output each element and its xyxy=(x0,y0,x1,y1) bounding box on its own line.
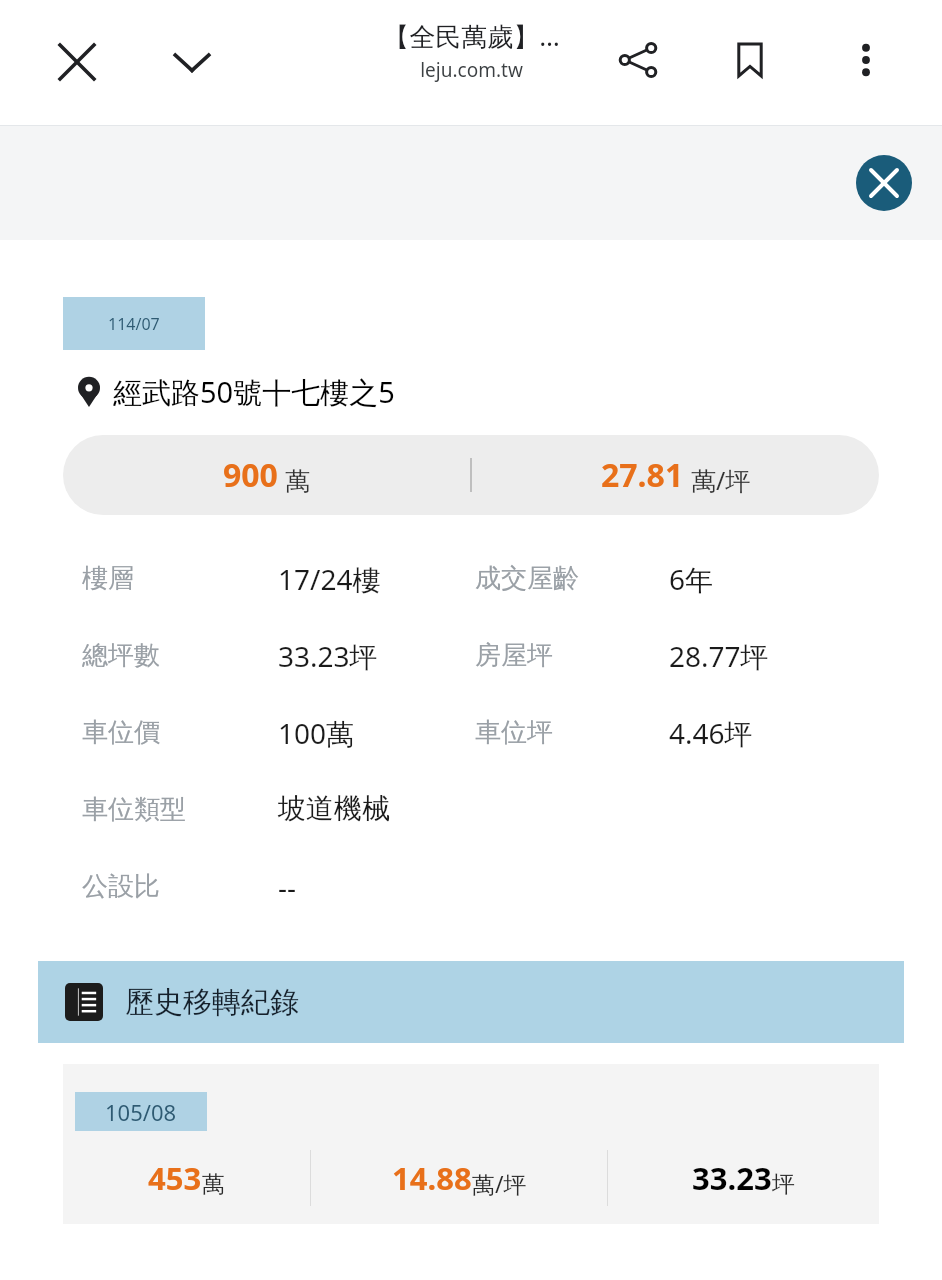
button[interactable]: Close ad xyxy=(856,155,912,211)
staticText: 歷史移轉紀錄 xyxy=(125,984,299,1021)
staticText: 28.77坪 xyxy=(669,637,769,675)
staticText: 車位類型 xyxy=(82,793,186,826)
button[interactable]: More options xyxy=(828,22,904,98)
button[interactable]: Share xyxy=(600,22,676,98)
staticText: 114/07 xyxy=(108,313,160,335)
staticText: 成交屋齡 xyxy=(475,562,579,595)
staticText: 萬 xyxy=(285,466,310,497)
staticText: 萬/坪 xyxy=(472,1168,527,1199)
staticText: 453 xyxy=(148,1157,202,1199)
staticText: 萬/坪 xyxy=(691,463,751,497)
staticText: 100萬 xyxy=(278,714,355,752)
staticText: 車位坪 xyxy=(475,716,553,749)
staticText: 14.88 xyxy=(392,1157,472,1199)
button[interactable]: Close xyxy=(40,25,114,99)
staticText: 車位價 xyxy=(82,716,160,749)
staticText: 27.81 xyxy=(601,453,684,497)
staticText: 33.23 xyxy=(692,1157,772,1199)
staticText: 17/24樓 xyxy=(278,560,381,598)
staticText: 樓層 xyxy=(82,562,134,595)
staticText: 公設比 xyxy=(82,870,160,903)
staticText: 坡道機械 xyxy=(278,791,390,826)
staticText: leju.com.tw xyxy=(420,57,523,83)
staticText: 105/08 xyxy=(105,1097,177,1127)
button[interactable]: 歷史移轉紀錄 xyxy=(38,961,904,1043)
staticText: 萬 xyxy=(202,1170,225,1199)
staticText: 4.46坪 xyxy=(669,714,753,752)
staticText: 坪 xyxy=(772,1170,795,1199)
staticText: -- xyxy=(278,868,297,906)
staticText: 900 xyxy=(223,453,278,497)
staticText: 房屋坪 xyxy=(475,639,553,672)
staticText: 【全民萬歲】… xyxy=(383,18,560,54)
staticText: 總坪數 xyxy=(82,639,160,672)
staticText: 33.23坪 xyxy=(278,637,378,675)
staticText: 經武路50號十七樓之5 xyxy=(113,372,395,412)
staticText: 6年 xyxy=(669,560,714,598)
button[interactable]: Expand xyxy=(155,25,229,99)
button[interactable]: Bookmark xyxy=(712,22,788,98)
